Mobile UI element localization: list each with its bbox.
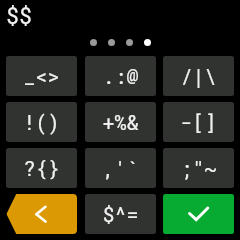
button[interactable]: -[] bbox=[163, 102, 234, 142]
staticText: ;"~ bbox=[180, 155, 217, 181]
button[interactable]: ,'` bbox=[85, 148, 156, 188]
button[interactable]: _<> bbox=[6, 56, 77, 96]
staticText: ,'` bbox=[102, 155, 139, 181]
staticText: $$ bbox=[6, 1, 32, 29]
button[interactable]: !() bbox=[6, 102, 77, 142]
staticText: $^= bbox=[102, 201, 139, 227]
button[interactable]: .:@ bbox=[85, 56, 156, 96]
staticText: +%& bbox=[102, 109, 139, 135]
button[interactable]: Backspace bbox=[6, 194, 77, 234]
staticText: !() bbox=[23, 109, 60, 135]
button[interactable]: $^= bbox=[85, 194, 156, 234]
button[interactable]: /|\ bbox=[163, 56, 234, 96]
staticText: .:@ bbox=[102, 63, 139, 89]
button[interactable]: +%& bbox=[85, 102, 156, 142]
button[interactable]: ?{} bbox=[6, 148, 77, 188]
staticText: /|\ bbox=[180, 63, 217, 89]
button[interactable]: Accept bbox=[163, 194, 234, 234]
staticText: ?{} bbox=[23, 155, 60, 181]
staticText: _<> bbox=[23, 63, 60, 89]
staticText: -[] bbox=[180, 109, 217, 135]
button[interactable]: ;"~ bbox=[163, 148, 234, 188]
